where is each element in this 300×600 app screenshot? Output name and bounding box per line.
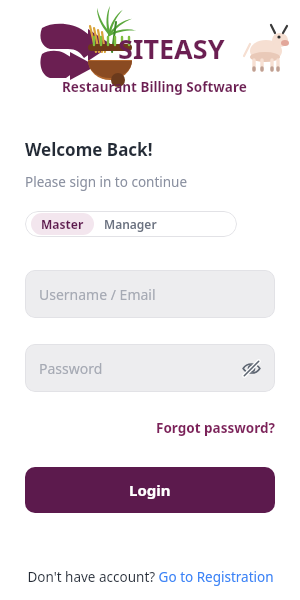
button[interactable]: Username / Email <box>25 270 275 318</box>
staticText: Password <box>39 359 103 378</box>
button[interactable]: Password <box>25 344 275 392</box>
staticText: Don't have account? Go to Registration <box>27 568 274 586</box>
staticText: Login <box>129 480 171 500</box>
staticText: Master <box>41 216 84 232</box>
button[interactable]: Forgot password? <box>156 417 275 439</box>
staticText: Please sign in to continue <box>25 173 188 191</box>
staticText: Username / Email <box>39 285 156 304</box>
button[interactable]: Don't have account? Go to Registration <box>27 568 274 586</box>
staticText: SITEASY <box>118 30 225 67</box>
staticText: Forgot password? <box>156 419 275 437</box>
button[interactable]: Show password <box>235 352 267 384</box>
button[interactable]: Manager <box>94 213 167 235</box>
button[interactable]: Master <box>31 213 94 235</box>
staticText: Manager <box>104 216 157 232</box>
staticText: Restaurant Billing Software <box>62 78 247 96</box>
button[interactable]: Login <box>25 467 275 513</box>
staticText: Welcome Back! <box>25 138 153 161</box>
